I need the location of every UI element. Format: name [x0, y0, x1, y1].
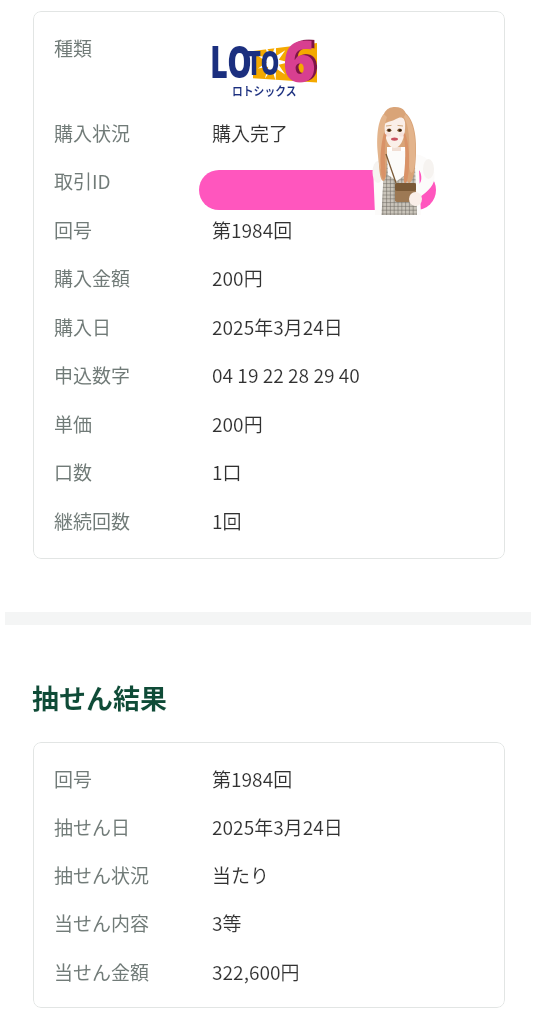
staticText: 購入状況 — [54, 119, 212, 147]
staticText: 回号 — [54, 216, 212, 244]
staticText: 購入金額 — [54, 264, 212, 292]
staticText: 口数 — [54, 458, 212, 486]
staticText: 当せん金額 — [54, 958, 212, 986]
staticText: 3等 — [212, 909, 242, 937]
button[interactable]: 継続回数 — [34, 497, 504, 545]
staticText: TO — [247, 39, 280, 85]
staticText: 抽せん結果 — [32, 678, 167, 717]
staticText: 2025年3月24日 — [212, 813, 343, 841]
staticText: 6 — [286, 21, 319, 83]
button[interactable]: 購入金額 — [34, 254, 504, 302]
staticText: 04 19 22 28 29 40 — [212, 361, 360, 389]
staticText: 第1984回 — [212, 216, 293, 244]
staticText: 購入日 — [54, 313, 212, 341]
staticText: 当せん内容 — [54, 909, 212, 937]
staticText: 第1984回 — [212, 765, 293, 793]
button[interactable]: 口数 — [34, 448, 504, 496]
staticText: 種類 — [54, 34, 212, 62]
button[interactable]: 当せん金額 — [34, 948, 504, 996]
button[interactable]: 当せん内容 — [34, 899, 504, 947]
button[interactable]: 購入状況 — [34, 109, 504, 157]
staticText: 継続回数 — [54, 507, 212, 535]
button[interactable]: 取引ID — [34, 157, 504, 205]
staticText: 購入完了 — [212, 119, 289, 147]
staticText: 2025年3月24日 — [212, 313, 343, 341]
staticText: ロトシックス — [232, 82, 297, 99]
button[interactable]: 種類 — [34, 17, 504, 79]
staticText: 1口 — [212, 458, 242, 486]
staticText: 6 — [283, 22, 316, 84]
staticText: 200円 — [212, 410, 263, 438]
button[interactable]: 購入日 — [34, 303, 504, 351]
button[interactable]: 抽せん日 — [34, 803, 504, 851]
staticText: 申込数字 — [54, 361, 212, 389]
button[interactable]: 申込数字 — [34, 351, 504, 399]
staticText: 200円 — [212, 264, 263, 292]
staticText: 回号 — [54, 765, 212, 793]
button[interactable]: 回号 — [34, 206, 504, 254]
staticText: 単価 — [54, 410, 212, 438]
staticText: 抽せん日 — [54, 813, 212, 841]
staticText: 当たり — [212, 861, 270, 889]
staticText: 1回 — [212, 507, 242, 535]
button[interactable]: 抽せん状況 — [34, 851, 504, 899]
button[interactable]: 回号 — [34, 755, 504, 803]
staticText: 抽せん状況 — [54, 861, 212, 889]
button[interactable]: 単価 — [34, 400, 504, 448]
staticText: 322,600円 — [212, 958, 300, 986]
staticText: LO — [210, 31, 252, 91]
staticText: 取引ID — [54, 167, 212, 195]
